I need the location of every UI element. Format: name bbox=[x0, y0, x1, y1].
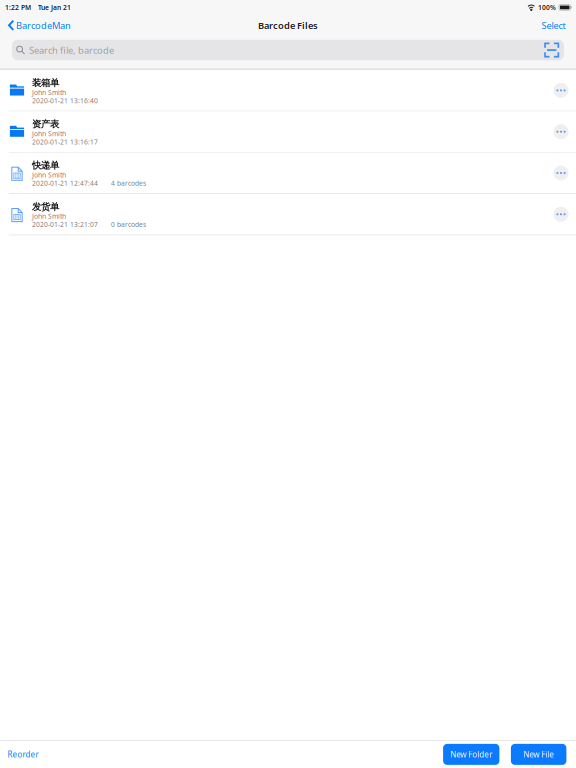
staticText: Tue Jan 21 bbox=[38, 3, 71, 12]
staticText: John Smith bbox=[32, 170, 66, 179]
staticText: 资产表 bbox=[32, 118, 59, 130]
staticText: New File bbox=[523, 749, 554, 760]
staticText: John Smith bbox=[32, 129, 66, 138]
button[interactable]: 资产表 bbox=[0, 111, 576, 153]
staticText: 2020-01-21 13:21:07 bbox=[32, 220, 98, 229]
button[interactable]: More actions bbox=[553, 165, 568, 180]
staticText: 1:22 PM bbox=[5, 3, 31, 12]
staticText: 2020-01-21 13:16:17 bbox=[32, 137, 98, 146]
staticText: Search file, barcode bbox=[29, 44, 114, 56]
staticText: 4 barcodes bbox=[111, 179, 146, 188]
button[interactable]: BarcodeMan bbox=[0, 16, 71, 34]
button[interactable]: New Folder bbox=[443, 744, 499, 765]
staticText: John Smith bbox=[32, 88, 66, 97]
button[interactable]: New File bbox=[511, 744, 566, 765]
button[interactable]: Reorder bbox=[0, 744, 38, 765]
staticText: 0 barcodes bbox=[111, 220, 146, 229]
staticText: 100% bbox=[538, 3, 556, 12]
staticText: 发货单 bbox=[32, 201, 59, 212]
staticText: 装箱单 bbox=[32, 77, 59, 89]
staticText: Barcode Files bbox=[258, 19, 318, 31]
button[interactable]: More actions bbox=[553, 124, 568, 139]
button[interactable]: 快递单 bbox=[0, 153, 576, 194]
button[interactable]: More actions bbox=[553, 83, 568, 98]
staticText: BarcodeMan bbox=[16, 19, 71, 31]
button[interactable]: Select bbox=[541, 16, 576, 34]
button[interactable]: 发货单 bbox=[0, 194, 576, 235]
staticText: 2020-01-21 12:47:44 bbox=[32, 179, 98, 188]
staticText: 2020-01-21 13:16:40 bbox=[32, 96, 98, 105]
staticText: New Folder bbox=[450, 749, 492, 760]
button[interactable]: Scan barcode bbox=[544, 42, 564, 57]
button[interactable]: More actions bbox=[553, 207, 568, 222]
staticText: Reorder bbox=[7, 749, 38, 760]
staticText: John Smith bbox=[32, 212, 66, 221]
button[interactable]: 装箱单 bbox=[0, 70, 576, 111]
staticText: Select bbox=[541, 19, 565, 31]
staticText: 快递单 bbox=[32, 160, 59, 171]
